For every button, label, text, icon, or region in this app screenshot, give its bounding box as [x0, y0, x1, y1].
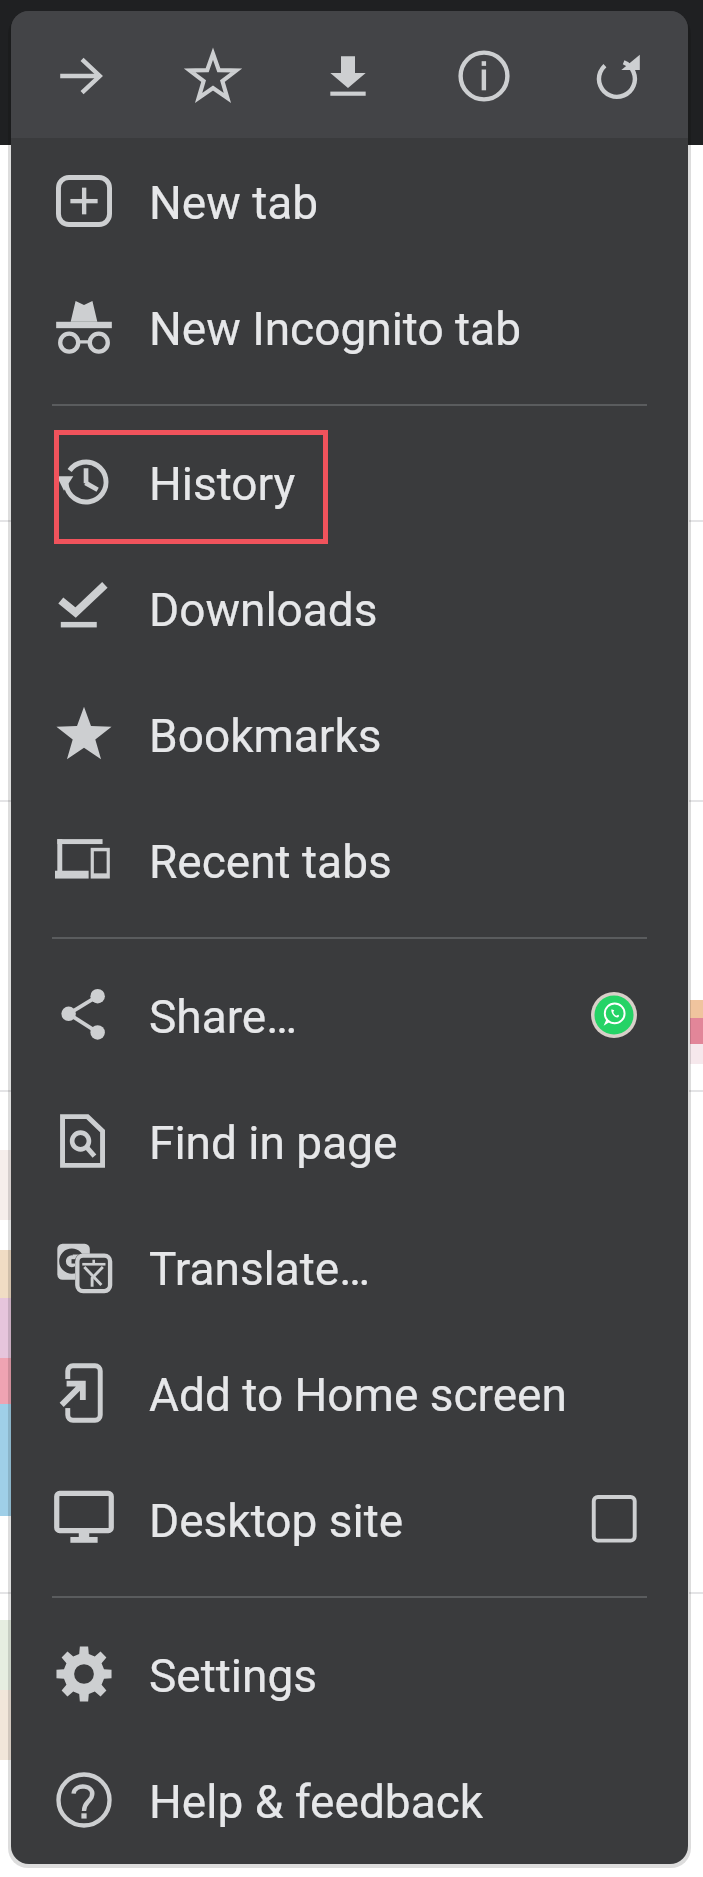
button[interactable]: Bookmark this page — [157, 20, 269, 132]
button[interactable]: Settings — [11, 1611, 688, 1737]
button[interactable]: Recent tabs — [11, 797, 688, 923]
staticText: Downloads — [149, 583, 378, 637]
button[interactable]: Desktop site — [11, 1456, 688, 1582]
staticText: History — [149, 457, 296, 511]
button[interactable]: Find in page — [11, 1078, 688, 1204]
button[interactable]: Bookmarks — [11, 671, 688, 797]
staticText: Help & feedback — [149, 1775, 484, 1829]
staticText: New Incognito tab — [149, 302, 521, 356]
staticText: Desktop site — [149, 1494, 404, 1548]
button[interactable]: Downloads — [11, 545, 688, 671]
staticText: Translate… — [149, 1242, 371, 1296]
staticText: New tab — [149, 176, 319, 230]
button[interactable]: Add to Home screen — [11, 1330, 688, 1456]
staticText: Recent tabs — [149, 835, 392, 889]
button[interactable]: Download page — [292, 20, 404, 132]
staticText: Settings — [149, 1649, 317, 1703]
button[interactable]: New tab — [11, 138, 688, 264]
button[interactable]: Share… — [11, 952, 688, 1078]
button[interactable]: Page info — [428, 20, 540, 132]
button[interactable]: History — [11, 419, 688, 545]
button[interactable]: Translate… — [11, 1204, 688, 1330]
button[interactable]: Help & feedback — [11, 1737, 688, 1863]
button[interactable]: Reload — [563, 20, 675, 132]
staticText: Add to Home screen — [149, 1368, 567, 1422]
staticText: Find in page — [149, 1116, 398, 1170]
staticText: Share… — [149, 990, 297, 1044]
button[interactable]: Forward — [25, 20, 137, 132]
button[interactable]: New Incognito tab — [11, 264, 688, 390]
staticText: Bookmarks — [149, 709, 382, 763]
